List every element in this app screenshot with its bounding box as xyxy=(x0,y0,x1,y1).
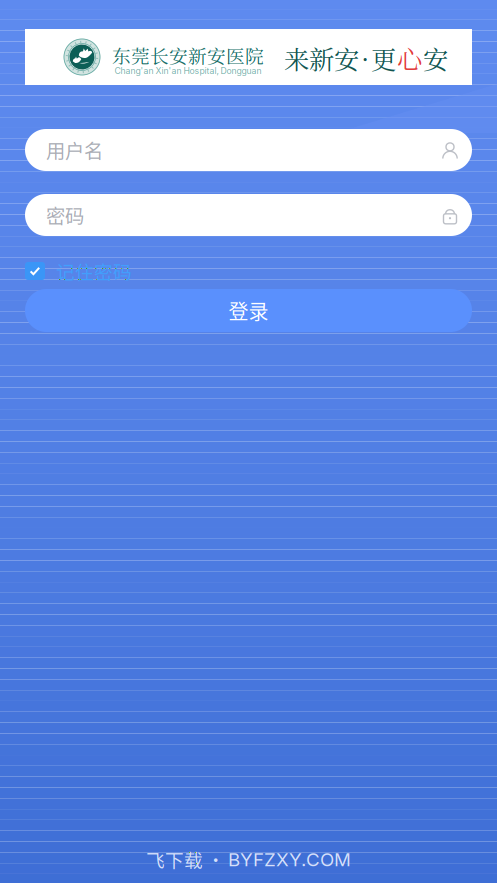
staticText: 密码 xyxy=(46,201,84,229)
staticText: 安 xyxy=(423,40,448,76)
staticText: 飞下载 xyxy=(146,846,203,873)
staticText: · xyxy=(361,40,369,76)
button[interactable]: 登录 xyxy=(25,289,472,332)
staticText: • xyxy=(207,847,224,872)
button[interactable]: 记住密码 xyxy=(25,262,472,280)
staticText: Chang'an Xin'an Hospital, Dongguan xyxy=(114,66,261,76)
staticText: 记住密码 xyxy=(56,257,132,284)
staticText: 更 xyxy=(371,40,396,76)
button[interactable]: 密码 xyxy=(25,194,472,236)
staticText: BYFZXY.COM xyxy=(228,848,351,871)
staticText: 东莞长安新安医院 xyxy=(112,42,264,69)
staticText: 心 xyxy=(397,40,422,76)
staticText: 用户名 xyxy=(46,136,103,164)
staticText: 来新安 xyxy=(284,40,359,76)
staticText: 登录 xyxy=(228,296,268,325)
button[interactable]: 用户名 xyxy=(25,129,472,171)
